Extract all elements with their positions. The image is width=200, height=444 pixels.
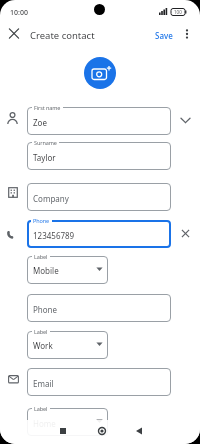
- staticText: Label: [34, 405, 48, 412]
- button[interactable]: [95, 423, 109, 437]
- button[interactable]: [178, 226, 193, 241]
- staticText: Mobile: [33, 265, 59, 276]
- button[interactable]: [27, 256, 108, 284]
- button[interactable]: [84, 57, 116, 89]
- button[interactable]: Save: [150, 26, 176, 42]
- staticText: First name: [34, 104, 61, 111]
- button[interactable]: [27, 220, 171, 248]
- staticText: Label: [34, 328, 48, 335]
- button[interactable]: [27, 408, 108, 436]
- button[interactable]: [27, 183, 171, 211]
- staticText: Label: [34, 253, 48, 260]
- button[interactable]: [27, 142, 171, 170]
- staticText: Phone: [33, 217, 50, 224]
- button[interactable]: [180, 26, 194, 42]
- staticText: Create contact: [30, 29, 95, 42]
- button[interactable]: [132, 423, 146, 437]
- button[interactable]: [27, 368, 171, 396]
- staticText: 10:00: [10, 8, 28, 18]
- staticText: Work: [33, 340, 53, 351]
- staticText: Home: [33, 418, 56, 429]
- button[interactable]: [6, 25, 22, 41]
- staticText: 123456789: [33, 230, 75, 241]
- button[interactable]: [56, 423, 70, 437]
- staticText: Phone: [33, 304, 58, 315]
- staticText: Zoe: [33, 117, 47, 128]
- button[interactable]: [178, 112, 194, 128]
- button[interactable]: [27, 294, 171, 322]
- staticText: Save: [155, 30, 173, 41]
- staticText: Email: [33, 378, 54, 389]
- button[interactable]: [27, 107, 171, 135]
- button[interactable]: [27, 331, 108, 359]
- staticText: Surname: [34, 139, 57, 146]
- staticText: Company: [33, 193, 69, 204]
- staticText: 100: [174, 9, 182, 15]
- staticText: Taylor: [33, 152, 56, 163]
